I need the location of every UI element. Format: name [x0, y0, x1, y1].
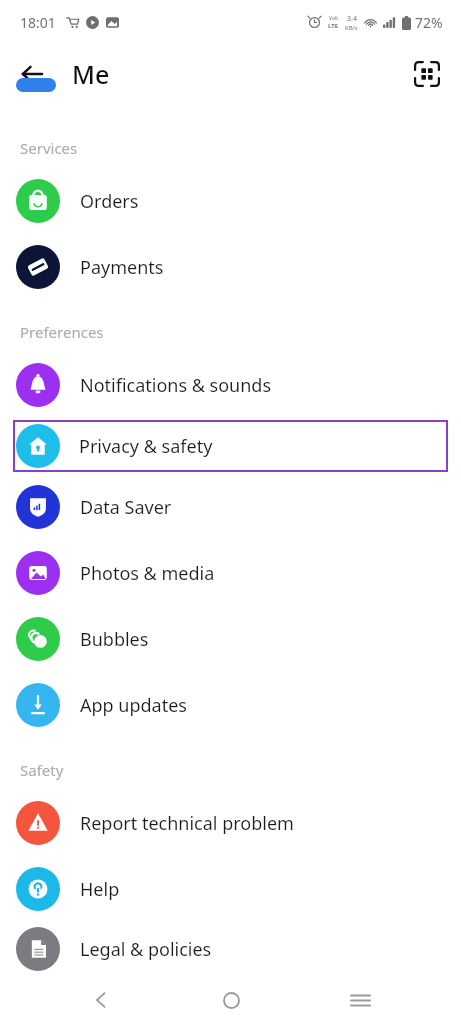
button[interactable]: Privacy & safety — [13, 420, 448, 472]
staticText: Help — [80, 877, 120, 902]
staticText: Me — [72, 57, 110, 91]
button[interactable]: Notifications & sounds — [0, 352, 461, 418]
staticText: Legal & policies — [80, 937, 212, 962]
button[interactable]: Back — [8, 50, 56, 98]
button[interactable]: Photos & media — [0, 540, 461, 606]
button[interactable]: Payments — [0, 234, 461, 300]
staticText: 72% — [415, 13, 443, 32]
staticText: Volt — [329, 15, 339, 22]
staticText: 3.4 — [347, 14, 357, 24]
staticText: KB/s — [345, 24, 358, 32]
button[interactable]: App updates — [0, 672, 461, 738]
staticText: LTE — [328, 22, 339, 30]
staticText: 18:01 — [20, 13, 56, 32]
staticText: Photos & media — [80, 561, 215, 586]
staticText: Bubbles — [80, 627, 149, 652]
button[interactable]: Legal & policies — [0, 922, 461, 976]
staticText: Orders — [80, 189, 139, 214]
button[interactable]: Back — [73, 976, 129, 1024]
button[interactable]: Recent apps — [332, 976, 388, 1024]
button[interactable]: Help — [0, 856, 461, 922]
staticText: Preferences — [20, 322, 104, 342]
button[interactable]: Data Saver — [0, 474, 461, 540]
button[interactable]: Scan QR code — [403, 50, 451, 98]
staticText: Payments — [80, 255, 164, 280]
button[interactable]: Report technical problem — [0, 790, 461, 856]
staticText: App updates — [80, 693, 187, 718]
staticText: Privacy & safety — [79, 434, 213, 459]
staticText: Report technical problem — [80, 811, 294, 836]
staticText: Services — [20, 138, 78, 158]
staticText: Notifications & sounds — [80, 373, 272, 398]
button[interactable]: Home — [203, 976, 259, 1024]
staticText: Safety — [20, 760, 64, 780]
button[interactable]: Orders — [0, 168, 461, 234]
button[interactable]: Bubbles — [0, 606, 461, 672]
staticText: Data Saver — [80, 495, 172, 520]
